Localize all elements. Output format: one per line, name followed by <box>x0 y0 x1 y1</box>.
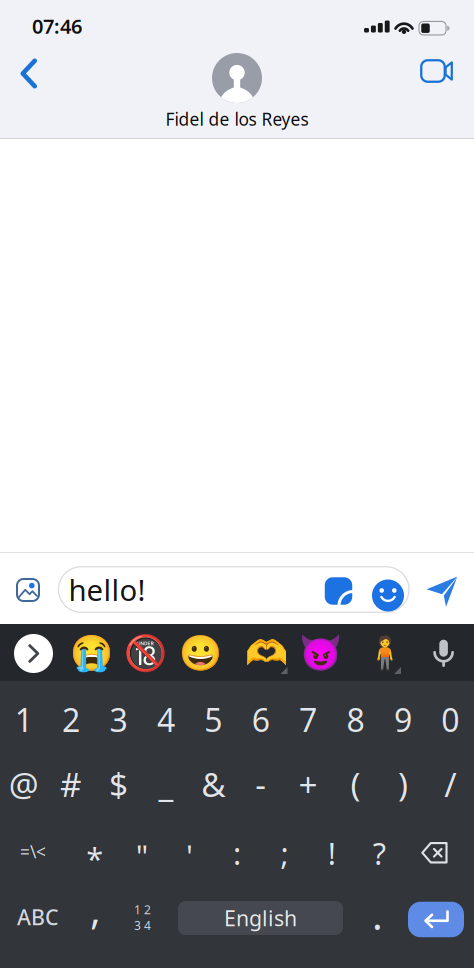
staticText: 7 <box>299 698 317 741</box>
button[interactable]: 7 <box>285 688 332 750</box>
button[interactable]: 🧍 <box>358 625 410 681</box>
button[interactable] <box>431 634 457 670</box>
button[interactable]: 😀 <box>174 625 226 681</box>
staticText: , <box>90 882 101 935</box>
button[interactable]: 5 <box>190 688 237 750</box>
staticText: 0 <box>441 698 459 741</box>
button[interactable]: , <box>75 878 115 940</box>
staticText: hello! <box>68 570 145 609</box>
staticText: : <box>233 833 241 873</box>
button[interactable]: 🔞 <box>119 625 171 681</box>
button[interactable]: * <box>71 827 118 889</box>
staticText: ; <box>280 833 288 873</box>
button[interactable]: + <box>285 753 332 815</box>
staticText: 3 4 <box>134 917 151 933</box>
button[interactable] <box>16 578 40 602</box>
button[interactable] <box>425 575 459 608</box>
button[interactable]: 1 <box>0 688 47 750</box>
staticText: ABC <box>17 903 59 931</box>
staticText: Fidel de los Reyes <box>165 107 308 130</box>
staticText: 3 <box>109 698 127 741</box>
staticText: 😈 <box>299 634 342 673</box>
staticText: 2 <box>62 698 80 741</box>
staticText: * <box>86 838 103 878</box>
button[interactable]: $ <box>95 753 142 815</box>
staticText: 😀 <box>178 634 221 673</box>
button[interactable]: hello! <box>58 567 409 612</box>
staticText: 5 <box>204 698 222 741</box>
staticText: _ <box>158 762 173 806</box>
button[interactable]: 6 <box>237 688 284 750</box>
button[interactable] <box>420 59 454 83</box>
staticText: 07:46 <box>32 13 82 39</box>
button[interactable]: 8 <box>332 688 379 750</box>
staticText: - <box>255 762 266 806</box>
button[interactable] <box>212 53 262 103</box>
button[interactable]: : <box>213 822 260 884</box>
staticText: ! <box>328 833 336 873</box>
button[interactable]: 2 <box>48 688 95 750</box>
button[interactable]: 3 <box>95 688 142 750</box>
staticText: 4 <box>157 698 175 741</box>
button[interactable] <box>372 579 404 611</box>
staticText: 8 <box>346 698 364 741</box>
staticText: 🫶 <box>244 634 287 673</box>
button[interactable]: 😈 <box>294 625 346 681</box>
staticText: 1 <box>15 698 33 741</box>
staticText: / <box>444 762 456 806</box>
button[interactable]: # <box>48 753 95 815</box>
staticText: 😭 <box>69 634 112 673</box>
staticText: ' <box>186 835 193 876</box>
button[interactable]: " <box>119 824 166 886</box>
staticText: 9 <box>394 698 412 741</box>
button[interactable]: =\< <box>3 820 63 882</box>
staticText: & <box>201 762 225 806</box>
staticText: 🔞 <box>124 634 167 673</box>
button[interactable] <box>325 577 352 605</box>
button[interactable]: 1 2 <box>120 886 164 948</box>
staticText: # <box>60 762 82 806</box>
button[interactable]: ) <box>379 753 426 815</box>
button[interactable] <box>421 841 449 865</box>
button[interactable]: 4 <box>142 688 189 750</box>
button[interactable]: ! <box>308 822 355 884</box>
button[interactable] <box>20 58 37 88</box>
button[interactable]: ' <box>166 824 213 886</box>
staticText: + <box>299 762 318 806</box>
staticText: " <box>136 835 149 876</box>
button[interactable]: @ <box>0 753 47 815</box>
staticText: English <box>224 904 297 932</box>
staticText: . <box>372 888 383 941</box>
button[interactable]: - <box>237 753 284 815</box>
button[interactable]: & <box>190 753 237 815</box>
button[interactable]: ABC <box>8 886 68 948</box>
staticText: ? <box>373 833 386 873</box>
button[interactable]: / <box>427 753 474 815</box>
staticText: 1 2 <box>134 902 151 917</box>
staticText: $ <box>109 762 128 806</box>
button[interactable]: 9 <box>379 688 426 750</box>
staticText: ) <box>398 762 408 806</box>
button[interactable] <box>14 634 53 673</box>
button[interactable]: ? <box>356 822 403 884</box>
button[interactable]: English <box>178 901 343 935</box>
staticText: 🧍 <box>364 635 404 672</box>
button[interactable]: _ <box>142 753 189 815</box>
button[interactable]: 0 <box>427 688 474 750</box>
staticText: =\< <box>20 840 46 863</box>
button[interactable]: 😭 <box>65 625 117 681</box>
staticText: 6 <box>252 698 270 741</box>
staticText: @ <box>9 762 39 806</box>
button[interactable]: . <box>357 883 397 945</box>
staticText: ( <box>350 762 360 806</box>
button[interactable] <box>408 902 464 937</box>
button[interactable]: 🫶 <box>240 625 292 681</box>
button[interactable]: ( <box>332 753 379 815</box>
button[interactable]: ; <box>261 822 308 884</box>
